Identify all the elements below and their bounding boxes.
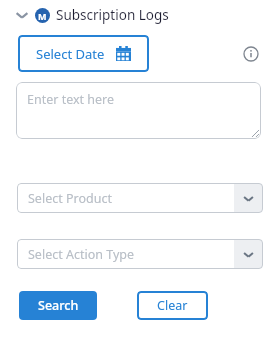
button[interactable]: Select Product [17,183,263,213]
staticText: Clear [157,297,188,314]
staticText: Select Action Type [28,246,135,263]
button[interactable]: Collapse section [0,4,273,26]
staticText: Subscription Logs [56,6,169,24]
staticText: Select Date [36,45,105,63]
staticText: Enter text here [27,91,115,108]
button[interactable]: Information [240,43,262,65]
button[interactable]: Enter text here [16,82,261,139]
staticText: M [38,10,47,22]
button[interactable]: Select Date [18,35,149,72]
staticText: Search [38,297,79,314]
button[interactable]: Search [19,291,97,320]
other: Collapse section [13,6,31,24]
button[interactable]: Clear [137,291,208,320]
button[interactable]: Select Action Type [17,239,263,269]
staticText: Select Product [28,190,112,207]
